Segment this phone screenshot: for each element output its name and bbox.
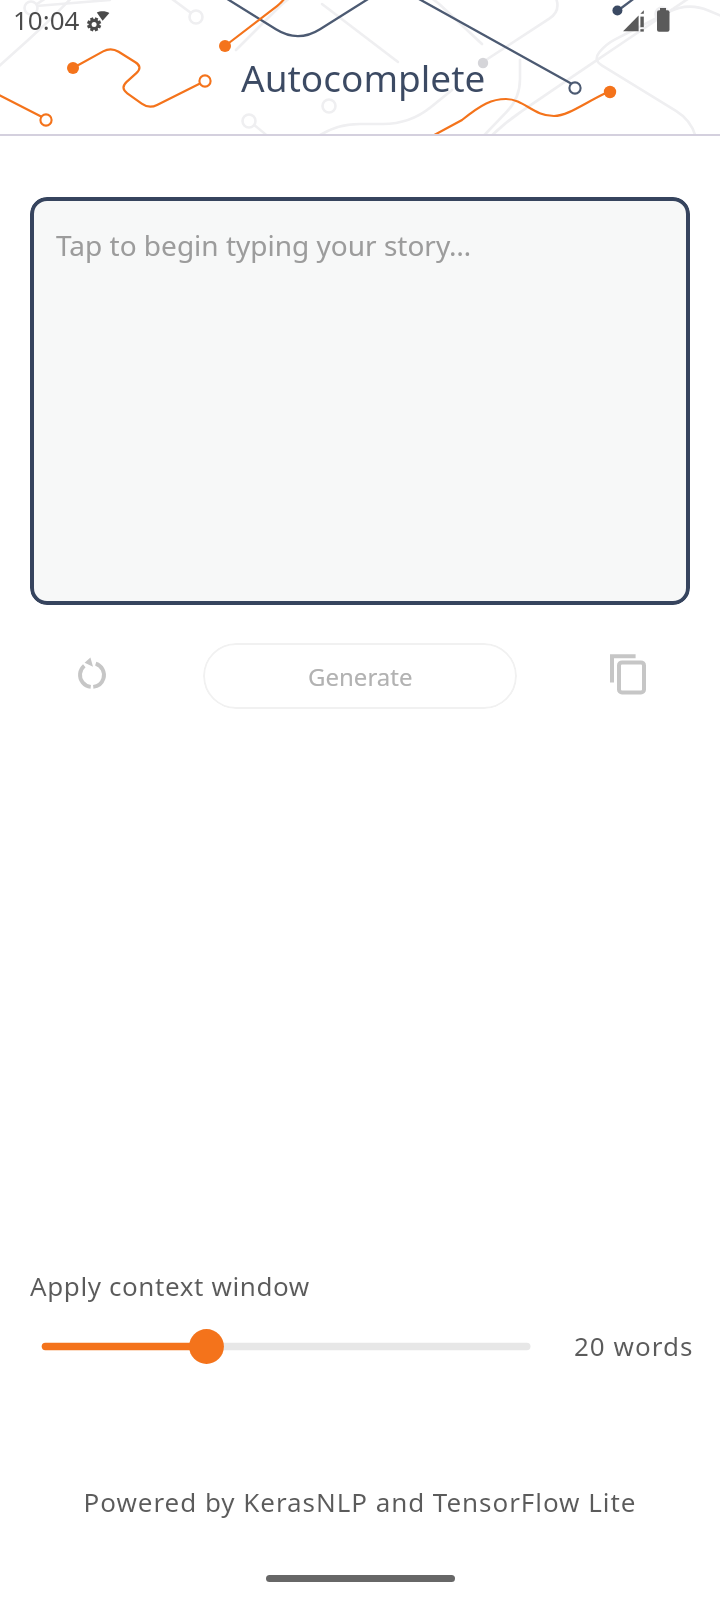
staticText: Powered by KerasNLP and TensorFlow Lite: [0, 1484, 720, 1519]
button[interactable]: Reset: [56, 642, 128, 708]
button[interactable]: Tap to begin typing your story…: [30, 197, 690, 605]
staticText: Apply context window: [30, 1268, 310, 1303]
staticText: Generate: [308, 660, 413, 693]
staticText: Tap to begin typing your story…: [56, 226, 472, 264]
staticText: Autocomplete: [241, 52, 486, 102]
button[interactable]: Context window slider: [28, 1326, 558, 1367]
button[interactable]: Generate: [203, 643, 517, 709]
staticText: 20 words: [574, 1328, 694, 1363]
button[interactable]: Copy: [589, 637, 661, 703]
staticText: 10:04: [13, 2, 80, 37]
